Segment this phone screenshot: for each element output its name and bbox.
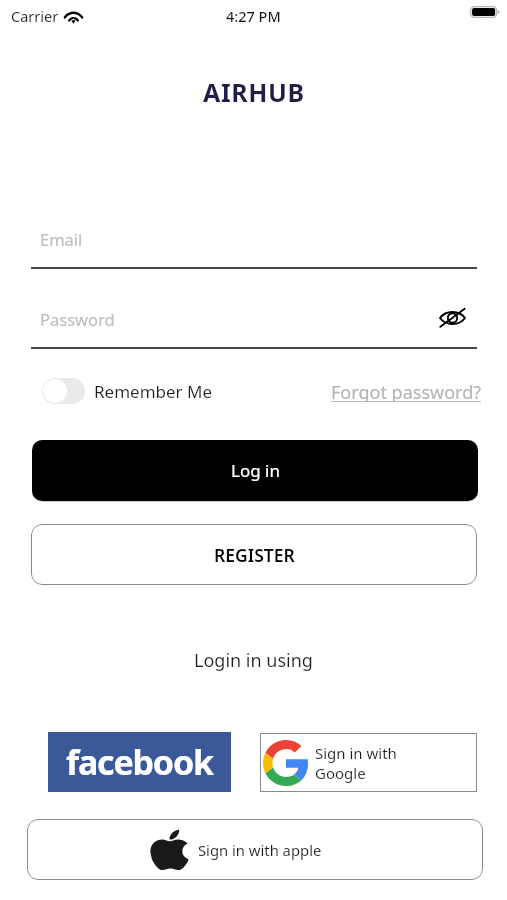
- staticText: Sign in with apple: [198, 840, 322, 860]
- button[interactable]: Log in: [32, 440, 478, 501]
- staticText: Login in using: [194, 648, 313, 673]
- staticText: AIRHUB: [203, 75, 305, 109]
- staticText: Google: [315, 763, 366, 783]
- button[interactable]: Sign in with: [260, 733, 477, 792]
- staticText: facebook: [66, 739, 213, 785]
- staticText: REGISTER: [214, 543, 295, 567]
- staticText: Log in: [231, 459, 280, 482]
- staticText: Password: [40, 308, 115, 330]
- button[interactable]: Remember Me: [31, 378, 219, 404]
- staticText: Email: [40, 228, 83, 250]
- button[interactable]: REGISTER: [31, 524, 477, 585]
- staticText: Carrier: [11, 6, 59, 26]
- staticText: 4:27 PM: [226, 6, 281, 26]
- button[interactable]: Forgot password?: [331, 376, 482, 406]
- staticText: Sign in with: [315, 743, 397, 763]
- staticText: Remember Me: [94, 380, 213, 403]
- button[interactable]: Sign in with Facebook: [48, 732, 231, 792]
- staticText: Forgot password?: [331, 380, 482, 402]
- button[interactable]: Show password: [433, 299, 471, 337]
- button[interactable]: Sign in with apple: [27, 819, 483, 880]
